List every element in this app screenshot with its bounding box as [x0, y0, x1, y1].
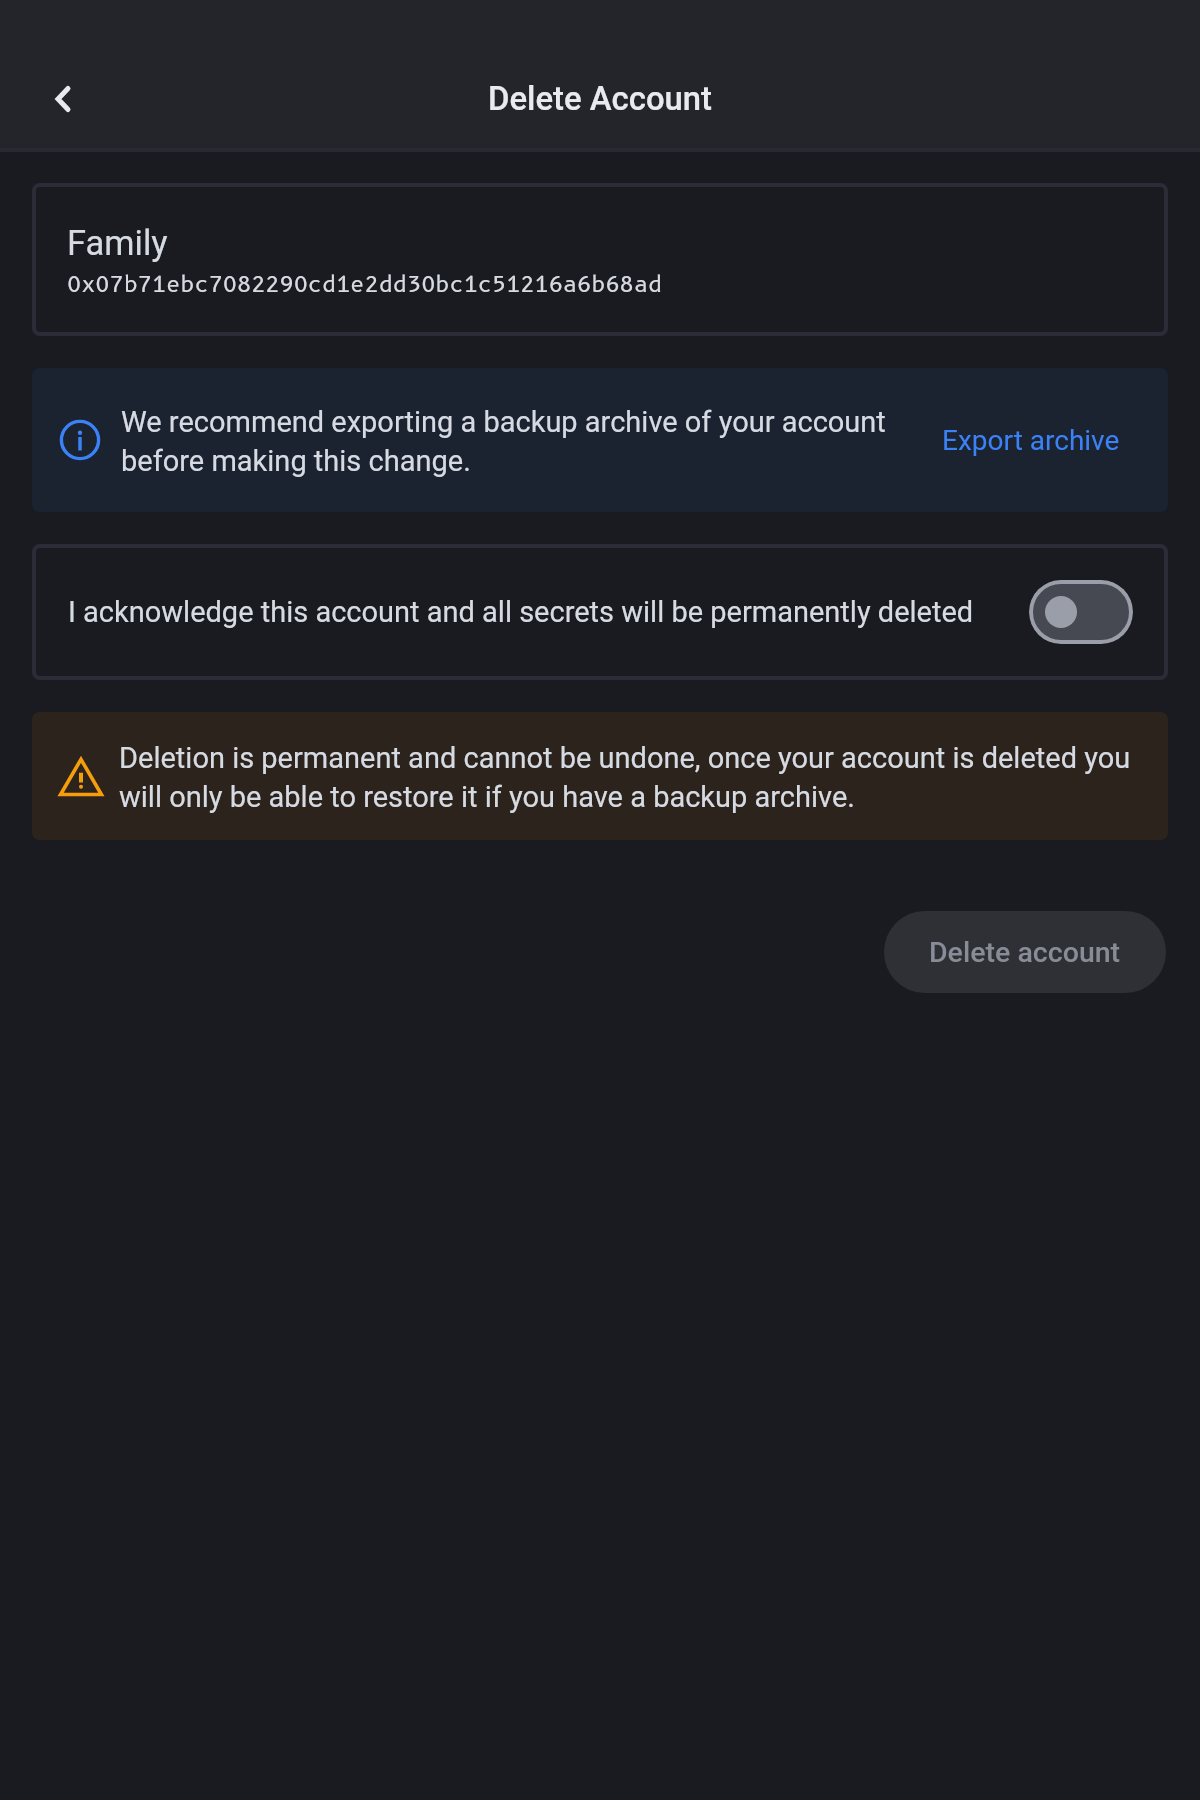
staticText: Export archive — [942, 424, 1120, 457]
button[interactable]: I acknowledge this account and all secre… — [32, 544, 1168, 680]
button[interactable]: Back — [22, 50, 104, 148]
staticText: Deletion is permanent and cannot be undo… — [119, 737, 1140, 815]
staticText: I acknowledge this account and all secre… — [68, 595, 1005, 629]
button[interactable]: Export archive — [942, 414, 1120, 467]
staticText: 0x07b71ebc7082290cd1e2dd30bc1c51216a6b68… — [67, 271, 663, 297]
button[interactable]: Acknowledge deletion toggle — [1029, 580, 1133, 644]
staticText: Family — [67, 223, 168, 263]
button[interactable]: Delete account — [884, 911, 1166, 993]
staticText: We recommend exporting a backup archive … — [121, 401, 920, 479]
staticText: Delete Account — [488, 80, 712, 118]
staticText: Delete account — [929, 936, 1121, 969]
